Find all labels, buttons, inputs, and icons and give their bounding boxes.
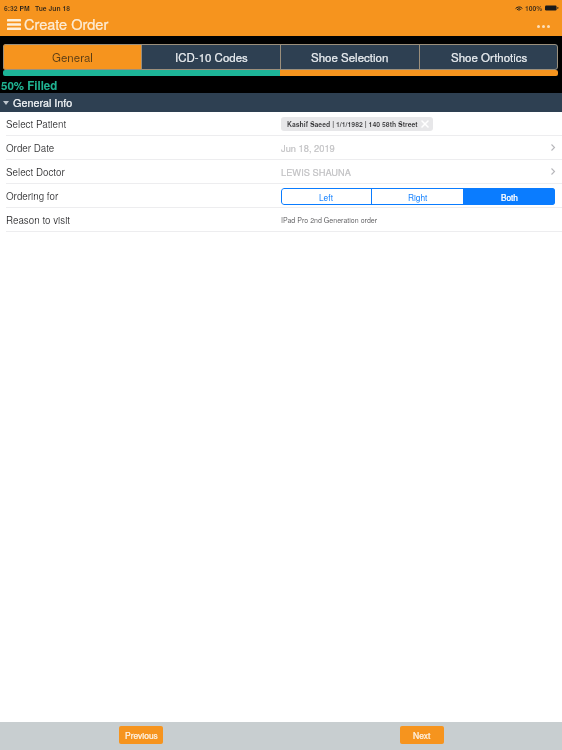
staticText: Kashif Saeed | 1/1/1982 | 140 58th Stree… bbox=[287, 119, 418, 129]
staticText: Ordering for bbox=[6, 189, 59, 203]
button[interactable]: Right bbox=[372, 188, 463, 205]
staticText: Tue Jun 18 bbox=[35, 3, 71, 13]
button[interactable]: Both bbox=[464, 188, 555, 205]
button[interactable]: More options bbox=[531, 17, 555, 35]
button[interactable]: Next bbox=[400, 726, 444, 744]
staticText: Reason to visit bbox=[6, 213, 71, 227]
staticText: Select Doctor bbox=[6, 165, 65, 179]
staticText: Next bbox=[413, 729, 431, 741]
other: Menu bbox=[7, 19, 21, 30]
staticText: 100% bbox=[525, 3, 543, 13]
button[interactable]: Reason to visit bbox=[0, 208, 562, 231]
button[interactable]: Select Doctor bbox=[0, 160, 562, 183]
staticText: Left bbox=[319, 191, 334, 203]
button[interactable]: Previous bbox=[119, 726, 163, 744]
staticText: Shoe Orthotics bbox=[451, 49, 528, 65]
button[interactable]: Shoe Selection bbox=[281, 44, 419, 70]
staticText: Create Order bbox=[24, 13, 109, 34]
button[interactable]: Order Date bbox=[0, 136, 562, 159]
staticText: Select Patient bbox=[6, 117, 67, 131]
staticText: General Info bbox=[13, 95, 73, 110]
staticText: Shoe Selection bbox=[311, 49, 389, 65]
staticText: ICD-10 Codes bbox=[175, 49, 248, 65]
button[interactable]: Kashif Saeed | 1/1/1982 | 140 58th Stree… bbox=[281, 117, 433, 131]
staticText: Both bbox=[501, 191, 518, 203]
button[interactable]: ICD-10 Codes bbox=[142, 44, 280, 70]
button[interactable]: Ordering for bbox=[0, 184, 562, 207]
button[interactable]: Select Patient bbox=[0, 112, 562, 135]
button[interactable]: Shoe Orthotics bbox=[420, 44, 558, 70]
staticText: General bbox=[52, 49, 93, 65]
button[interactable]: Menu bbox=[7, 15, 109, 36]
staticText: LEWIS SHAUNA bbox=[281, 165, 351, 178]
staticText: 6:32 PM bbox=[4, 3, 30, 13]
staticText: Jun 18, 2019 bbox=[281, 141, 335, 154]
staticText: Order Date bbox=[6, 141, 55, 155]
button[interactable]: General Info bbox=[0, 93, 562, 112]
staticText: 50% Filled bbox=[1, 77, 58, 93]
button[interactable]: Left bbox=[281, 188, 371, 205]
button[interactable]: General bbox=[3, 44, 141, 70]
staticText: IPad Pro 2nd Generation order bbox=[281, 215, 378, 225]
staticText: Previous bbox=[125, 729, 158, 741]
staticText: Right bbox=[408, 191, 428, 203]
button[interactable]: Remove patient bbox=[421, 120, 429, 128]
